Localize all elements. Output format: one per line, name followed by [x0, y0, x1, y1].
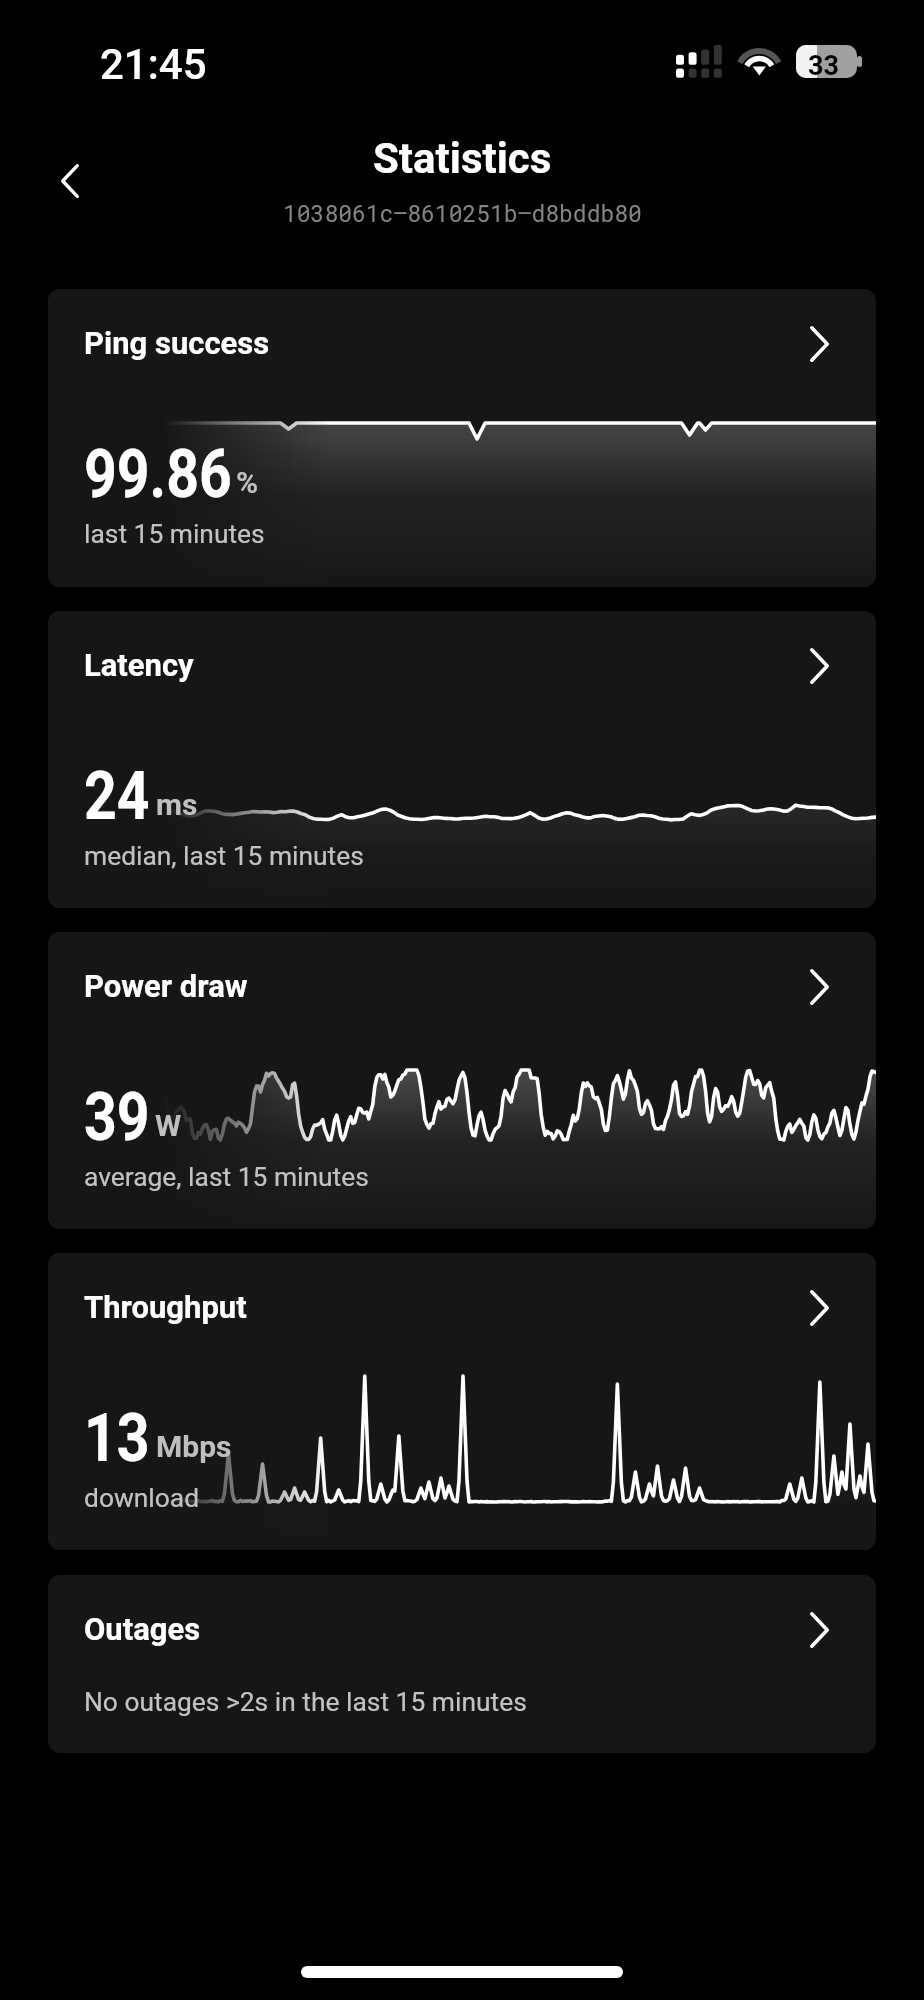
staticText: last 15 minutes: [84, 519, 265, 550]
staticText: 39: [84, 1079, 150, 1156]
staticText: 13: [84, 1400, 150, 1477]
staticText: average, last 15 minutes: [84, 1162, 369, 1193]
staticText: Throughput: [84, 1289, 247, 1325]
staticText: 33: [808, 50, 839, 78]
staticText: 24: [84, 758, 150, 835]
staticText: Mbps: [156, 1429, 232, 1464]
staticText: 21:45: [100, 40, 207, 89]
button[interactable]: Ping success: [48, 289, 876, 587]
button[interactable]: Power draw: [48, 932, 876, 1229]
staticText: median, last 15 minutes: [84, 841, 364, 872]
button[interactable]: Throughput: [48, 1253, 876, 1550]
staticText: download: [84, 1483, 200, 1514]
staticText: Ping success: [84, 325, 270, 361]
staticText: 1038061c–8610251b–d8bddb80: [283, 198, 642, 228]
button[interactable]: Back: [40, 142, 100, 218]
staticText: Statistics: [373, 134, 552, 183]
staticText: Outages: [84, 1611, 201, 1647]
staticText: Power draw: [84, 968, 248, 1004]
staticText: ms: [156, 787, 198, 822]
staticText: %: [236, 465, 259, 500]
button[interactable]: Latency: [48, 611, 876, 908]
staticText: No outages >2s in the last 15 minutes: [84, 1687, 527, 1718]
staticText: Latency: [84, 647, 194, 683]
staticText: W: [155, 1108, 182, 1143]
staticText: 99.86: [84, 436, 232, 513]
button[interactable]: Outages: [48, 1575, 876, 1753]
